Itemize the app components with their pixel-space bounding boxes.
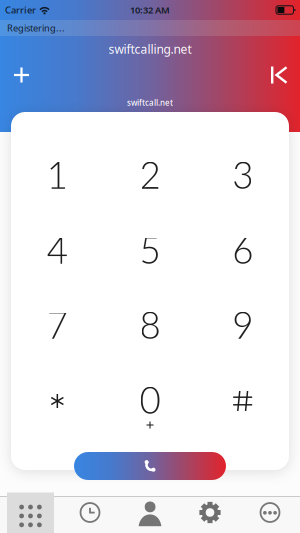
button[interactable]: 2 <box>104 137 196 212</box>
staticText: Carrier <box>5 4 36 16</box>
button[interactable]: 0 <box>104 362 196 437</box>
button[interactable]: Star <box>11 362 104 437</box>
staticText: 2 <box>139 152 160 196</box>
button[interactable]: Hide keypad <box>271 62 300 85</box>
button[interactable]: 4 <box>11 212 104 287</box>
button[interactable]: Keypad <box>7 492 54 533</box>
button[interactable]: Add contact <box>0 63 29 84</box>
button[interactable]: Pound <box>196 362 289 437</box>
staticText: 10:32 AM <box>130 4 170 16</box>
staticText: 9 <box>232 302 253 346</box>
button[interactable]: Contacts <box>120 500 180 525</box>
staticText: 1 <box>47 152 68 196</box>
staticText: 3 <box>232 152 253 196</box>
button[interactable]: 5 <box>104 212 196 287</box>
staticText: swiftcall.net <box>127 97 173 108</box>
button[interactable]: 3 <box>196 137 289 212</box>
button[interactable]: 9 <box>196 287 289 362</box>
staticText: 7 <box>47 302 68 346</box>
staticText: 8 <box>139 302 160 346</box>
button[interactable]: Call <box>74 452 226 480</box>
button[interactable]: Recents <box>60 503 120 522</box>
staticText: 0 <box>139 377 160 421</box>
button[interactable]: 6 <box>196 212 289 287</box>
button[interactable]: 8 <box>104 287 196 362</box>
staticText: 5 <box>139 227 160 271</box>
staticText: swiftcalling.net <box>108 41 191 57</box>
button[interactable]: 1 <box>11 137 104 212</box>
button[interactable]: 7 <box>11 287 104 362</box>
staticText: 4 <box>47 227 68 271</box>
button[interactable]: More <box>240 503 300 522</box>
button[interactable]: Settings <box>180 501 240 523</box>
staticText: Registering... <box>7 22 65 34</box>
staticText: 6 <box>232 227 253 271</box>
